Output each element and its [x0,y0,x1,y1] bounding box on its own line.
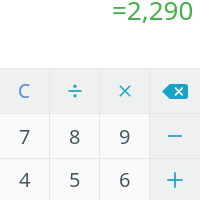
button[interactable]: Minus [150,114,200,158]
staticText: 8 [69,123,81,150]
button[interactable]: Multiply [100,69,149,113]
button[interactable]: 4 [0,159,49,200]
staticText: 7 [19,123,31,150]
button[interactable]: 5 [50,159,99,200]
staticText: C [18,78,31,104]
button[interactable]: Backspace [150,69,200,113]
staticText: 5 [69,166,81,193]
staticText: 4 [19,166,31,193]
button[interactable]: 7 [0,114,49,158]
staticText: 9 [119,123,131,150]
staticText: 6 [119,166,131,193]
button[interactable]: 9 [100,114,149,158]
button[interactable]: C [0,69,49,113]
button[interactable]: Divide [50,69,99,113]
button[interactable]: Plus [150,159,200,200]
staticText: =2,290 [112,0,194,27]
button[interactable]: 8 [50,114,99,158]
button[interactable]: 6 [100,159,149,200]
